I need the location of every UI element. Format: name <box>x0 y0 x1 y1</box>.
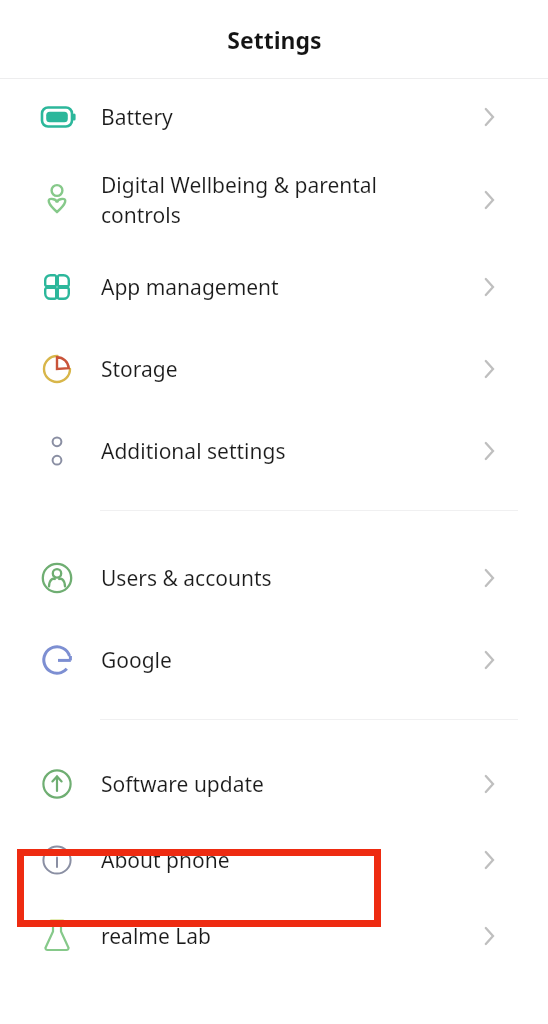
staticText: Additional settings <box>101 437 461 466</box>
staticText: Google <box>101 646 461 675</box>
button[interactable]: About phone <box>0 822 548 898</box>
staticText: Settings <box>227 24 322 55</box>
other: About phone highlight <box>17 849 381 927</box>
button[interactable]: realme Lab <box>0 898 548 974</box>
button[interactable]: Battery <box>0 80 548 154</box>
staticText: About phone <box>101 846 461 875</box>
staticText: App management <box>101 273 461 302</box>
button[interactable]: Additional settings <box>0 410 548 492</box>
button[interactable]: Digital Wellbeing & parental controls <box>0 154 548 246</box>
staticText: Digital Wellbeing & parental controls <box>101 171 461 229</box>
button[interactable]: App management <box>0 246 548 328</box>
staticText: realme Lab <box>101 922 461 951</box>
button[interactable]: Storage <box>0 328 548 410</box>
staticText: Battery <box>101 103 461 132</box>
staticText: Users & accounts <box>101 564 461 593</box>
button[interactable]: Users & accounts <box>0 537 548 619</box>
staticText: Storage <box>101 355 461 384</box>
button[interactable]: Software update <box>0 746 548 822</box>
button[interactable]: Google <box>0 619 548 701</box>
staticText: Software update <box>101 770 461 799</box>
